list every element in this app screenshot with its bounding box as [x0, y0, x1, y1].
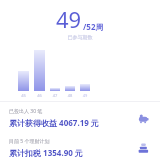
staticText: 49 — [80, 93, 90, 98]
button[interactable]: 目前 5 个理财计划 — [0, 138, 160, 158]
staticText: 已投出人 30 笔 — [9, 108, 43, 115]
staticText: 49 — [56, 4, 82, 34]
staticText: /52周 — [83, 21, 104, 32]
staticText: 累计获得收益 4067.19 元 — [9, 117, 99, 128]
staticText: 已参与期数 — [0, 34, 160, 40]
staticText: 46 — [34, 93, 45, 98]
staticText: 45 — [18, 93, 29, 98]
staticText: 47 — [50, 93, 60, 98]
staticText: 累计扣税 1354.90 元 — [9, 147, 83, 158]
button[interactable]: 已投出人 30 笔 — [0, 108, 160, 128]
staticText: 目前 5 个理财计划 — [9, 138, 50, 145]
staticText: 48 — [65, 93, 75, 98]
button[interactable]: Tax detail — [135, 140, 151, 156]
button[interactable]: Earnings detail — [135, 110, 151, 126]
